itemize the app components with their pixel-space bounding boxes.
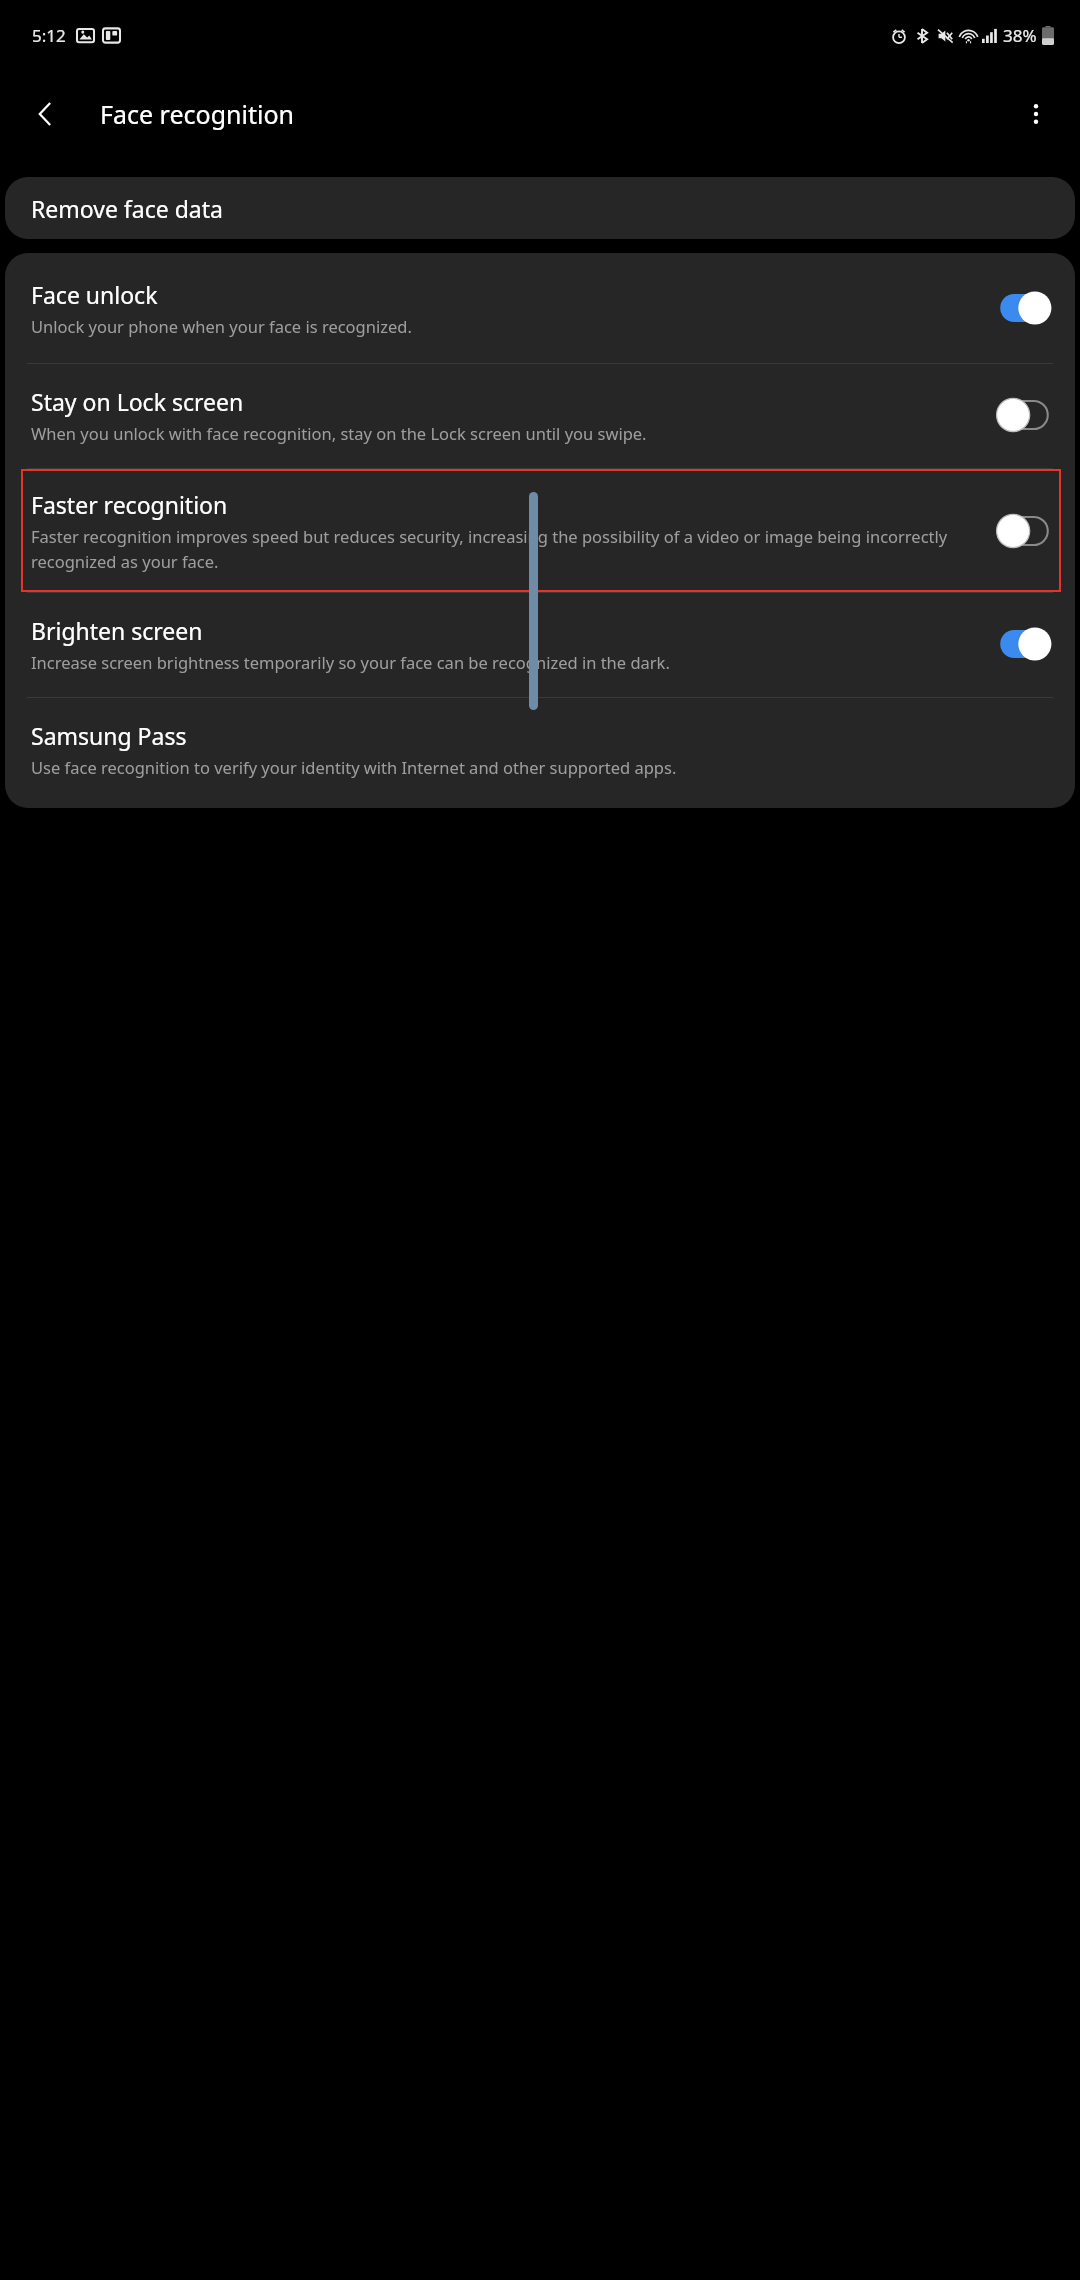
staticText: 5:12 <box>32 24 66 47</box>
button[interactable]: Off <box>995 513 1053 549</box>
button[interactable]: More options <box>1010 88 1062 140</box>
button[interactable]: Stay on Lock screen <box>5 364 1075 468</box>
staticText: Remove face data <box>31 193 223 224</box>
staticText: Brighten screen <box>31 615 203 646</box>
staticText: Faster recognition <box>31 489 228 520</box>
button[interactable]: Remove face data <box>5 177 1075 239</box>
button[interactable]: Faster recognition <box>5 469 1075 592</box>
button[interactable]: Navigate up <box>20 88 72 140</box>
staticText: Faster recognition improves speed but re… <box>31 525 983 572</box>
button[interactable]: Face unlock <box>5 253 1075 363</box>
staticText: Face unlock <box>31 279 158 310</box>
staticText: Face recognition <box>100 97 294 131</box>
staticText: Use face recognition to verify your iden… <box>31 756 677 778</box>
staticText: Samsung Pass <box>31 720 187 751</box>
button[interactable]: Off <box>995 397 1053 433</box>
staticText: Unlock your phone when your face is reco… <box>31 315 412 337</box>
staticText: When you unlock with face recognition, s… <box>31 422 647 444</box>
staticText: Stay on Lock screen <box>31 386 244 417</box>
button[interactable]: On <box>995 626 1053 662</box>
button[interactable]: On <box>995 290 1053 326</box>
button[interactable]: Samsung Pass <box>5 698 1075 808</box>
staticText: 38% <box>1003 24 1037 47</box>
staticText: Increase screen brightness temporarily s… <box>31 651 670 673</box>
button[interactable]: Brighten screen <box>5 593 1075 697</box>
